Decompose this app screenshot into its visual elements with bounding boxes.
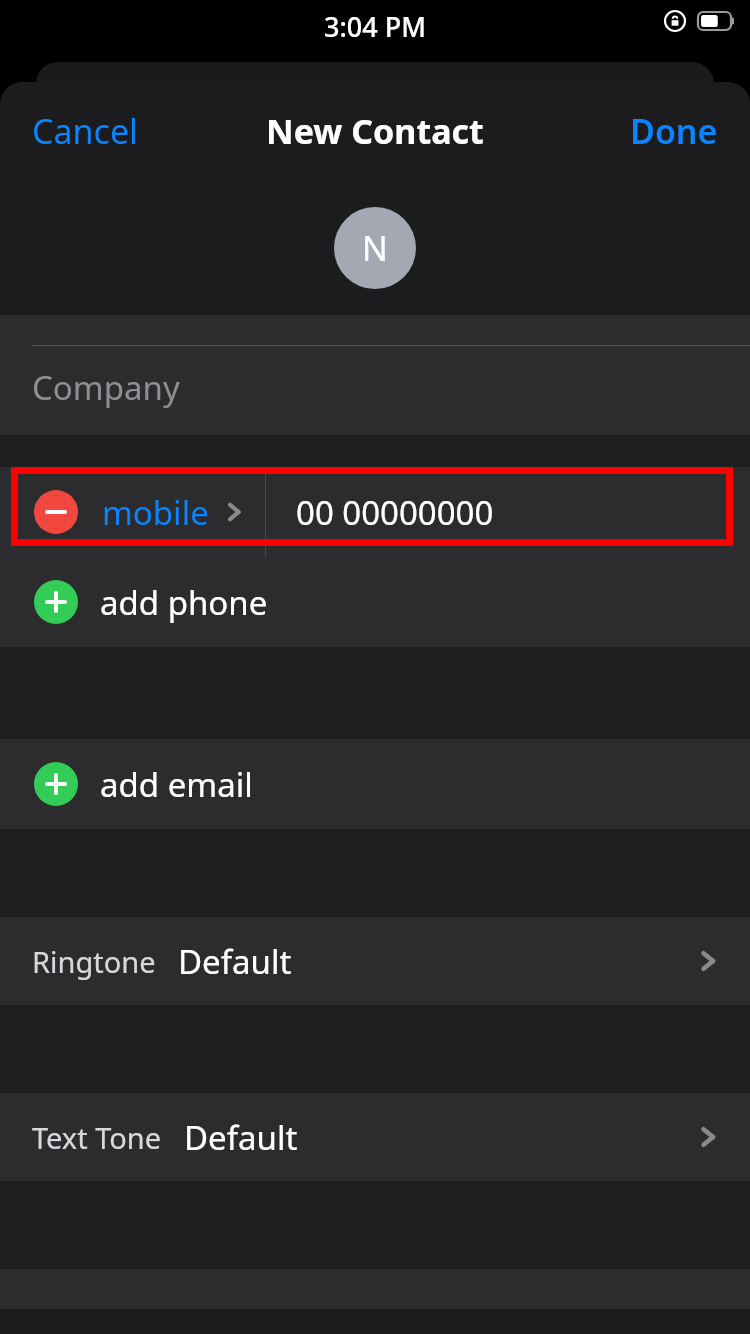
staticText: add email — [100, 762, 253, 807]
button[interactable]: Remove phone number — [0, 467, 750, 557]
button[interactable]: Company — [0, 315, 750, 435]
button[interactable]: Ringtone — [0, 917, 750, 1005]
staticText: New Contact — [266, 108, 484, 154]
staticText: Company — [32, 365, 180, 410]
button[interactable]: Cancel — [0, 98, 158, 164]
staticText: Done — [630, 108, 718, 154]
button[interactable]: Add contact photo — [334, 207, 416, 289]
button[interactable]: add phone — [0, 557, 750, 647]
staticText: 3:04 PM — [324, 8, 426, 45]
staticText: mobile — [102, 490, 209, 535]
staticText: N — [362, 225, 388, 271]
staticText: 00 00000000 — [296, 490, 494, 535]
staticText: add phone — [100, 580, 268, 625]
button[interactable]: Done — [610, 98, 750, 164]
button[interactable]: Text Tone — [0, 1093, 750, 1181]
staticText: Default — [178, 939, 292, 984]
button[interactable]: add email — [0, 739, 750, 829]
staticText: Default — [184, 1115, 298, 1160]
staticText: Ringtone — [32, 942, 156, 981]
button[interactable]: Remove phone number — [34, 490, 78, 534]
staticText: Text Tone — [32, 1118, 162, 1157]
staticText: Cancel — [32, 108, 138, 154]
